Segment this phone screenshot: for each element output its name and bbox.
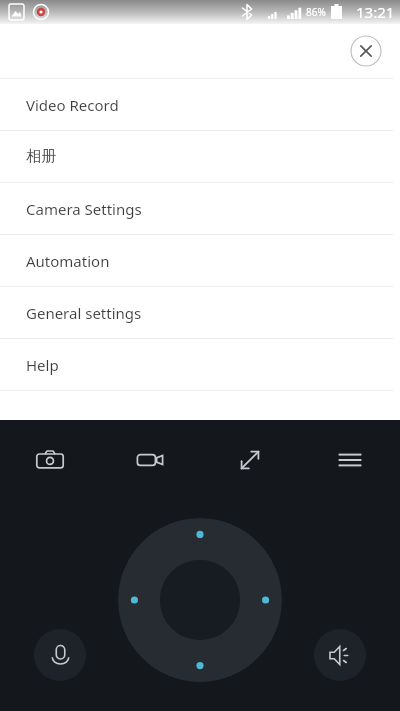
button[interactable]: Help (0, 339, 400, 390)
button[interactable]: Video Record (0, 79, 400, 130)
staticText: Automation (26, 251, 110, 271)
staticText: 86% (306, 5, 326, 19)
button[interactable]: Direction pad (118, 518, 282, 682)
button[interactable]: Video (100, 420, 200, 500)
staticText: 相册 (26, 147, 56, 166)
button[interactable]: Camera Settings (0, 183, 400, 234)
button[interactable]: 相册 (0, 131, 400, 182)
staticText: Video Record (26, 95, 119, 115)
staticText: General settings (26, 303, 142, 323)
staticText: 13:21 (356, 2, 395, 22)
button[interactable]: Photo (0, 420, 100, 500)
button[interactable]: Close (350, 35, 382, 67)
staticText: Camera Settings (26, 199, 142, 219)
button[interactable]: Microphone (34, 629, 86, 681)
staticText: Help (26, 355, 59, 375)
button[interactable]: Automation (0, 235, 400, 286)
button[interactable]: Menu (300, 420, 400, 500)
button[interactable]: General settings (0, 287, 400, 338)
button[interactable]: Speaker (314, 629, 366, 681)
button[interactable]: Fullscreen (200, 420, 300, 500)
